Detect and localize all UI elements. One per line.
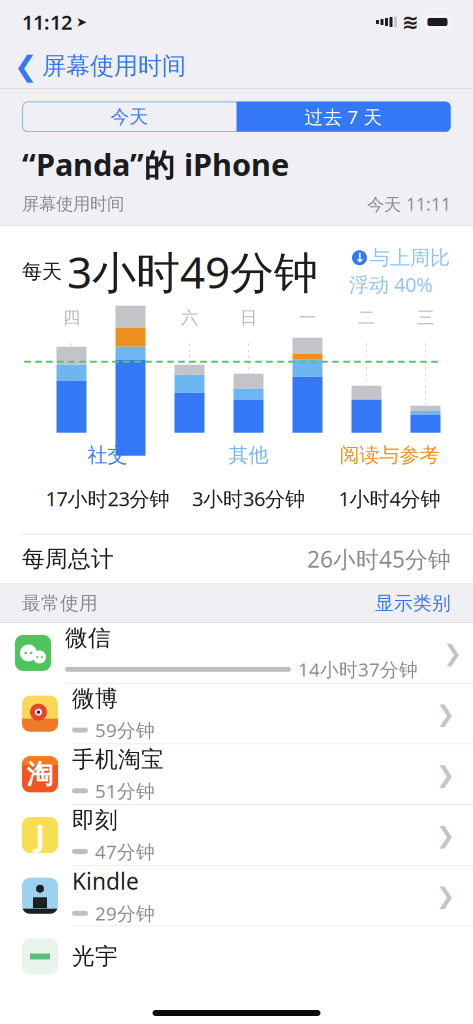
staticText: ❯ (436, 822, 455, 848)
button[interactable]: 淘 (0, 744, 473, 805)
staticText: 今天 (110, 105, 148, 128)
staticText: 日 (240, 307, 257, 328)
staticText: 与上周比 (370, 245, 450, 270)
staticText: 26小时45分钟 (307, 544, 451, 574)
staticText: Kindle (72, 866, 139, 896)
staticText: ≋ (402, 11, 419, 33)
staticText: 三 (417, 307, 434, 328)
staticText: 每周总计 (22, 545, 114, 573)
staticText: 14小时37分钟 (298, 657, 418, 682)
staticText: 阅读与参考 (339, 443, 439, 467)
staticText: 每天 (22, 259, 62, 284)
staticText: 17小时23分钟 (45, 485, 169, 512)
staticText: 3小时49分钟 (67, 242, 318, 301)
staticText: ➤ (76, 14, 87, 29)
button[interactable]: ❮ (0, 44, 200, 88)
staticText: 浮动 40% (349, 271, 433, 298)
staticText: 淘 (26, 758, 53, 791)
staticText: 显示类别 (375, 592, 451, 615)
staticText: 过去 7 天 (304, 104, 382, 129)
staticText: 47分钟 (95, 839, 155, 864)
staticText: ↓ (354, 250, 365, 265)
staticText: 光宇 (72, 942, 118, 970)
button[interactable]: Kindle (0, 866, 473, 926)
staticText: 一 (299, 307, 316, 328)
staticText: 即刻 (72, 806, 118, 834)
staticText: 3小时36分钟 (192, 485, 305, 512)
staticText: J (35, 815, 45, 855)
staticText: 五 (122, 307, 139, 328)
staticText: 今天 11:11 (367, 193, 451, 216)
button[interactable]: J (0, 805, 473, 866)
staticText: 1小时4分钟 (338, 485, 440, 512)
button[interactable]: 光宇 (0, 926, 473, 986)
staticText: ❯ (436, 761, 455, 787)
staticText: ❯ (436, 701, 455, 726)
staticText: 最常使用 (22, 592, 98, 615)
staticText: ❯ (443, 640, 462, 666)
staticText: 29分钟 (95, 901, 155, 926)
staticText: 手机淘宝 (72, 745, 164, 773)
button[interactable]: 今天 (22, 102, 236, 132)
button[interactable]: 微信 (0, 623, 473, 684)
staticText: 11:12 (22, 9, 72, 35)
staticText: 社交 (87, 443, 127, 467)
staticText: 四 (63, 307, 80, 328)
staticText: 屏幕使用时间 (42, 51, 186, 81)
button[interactable]: 显示类别 (375, 592, 451, 615)
staticText: 其他 (228, 443, 268, 467)
staticText: 微博 (72, 685, 118, 713)
staticText: 51分钟 (95, 778, 155, 803)
button[interactable]: 微博 (0, 684, 473, 744)
staticText: 微信 (65, 624, 111, 652)
staticText: 二 (358, 307, 375, 328)
staticText: ❮ (14, 50, 37, 82)
staticText: “Panda”的 iPhone (22, 144, 289, 185)
staticText: 59分钟 (95, 718, 155, 742)
staticText: 屏幕使用时间 (22, 193, 124, 215)
staticText: ❯ (436, 883, 455, 909)
staticText: 六 (181, 307, 198, 328)
button[interactable]: 过去 7 天 (236, 102, 450, 132)
